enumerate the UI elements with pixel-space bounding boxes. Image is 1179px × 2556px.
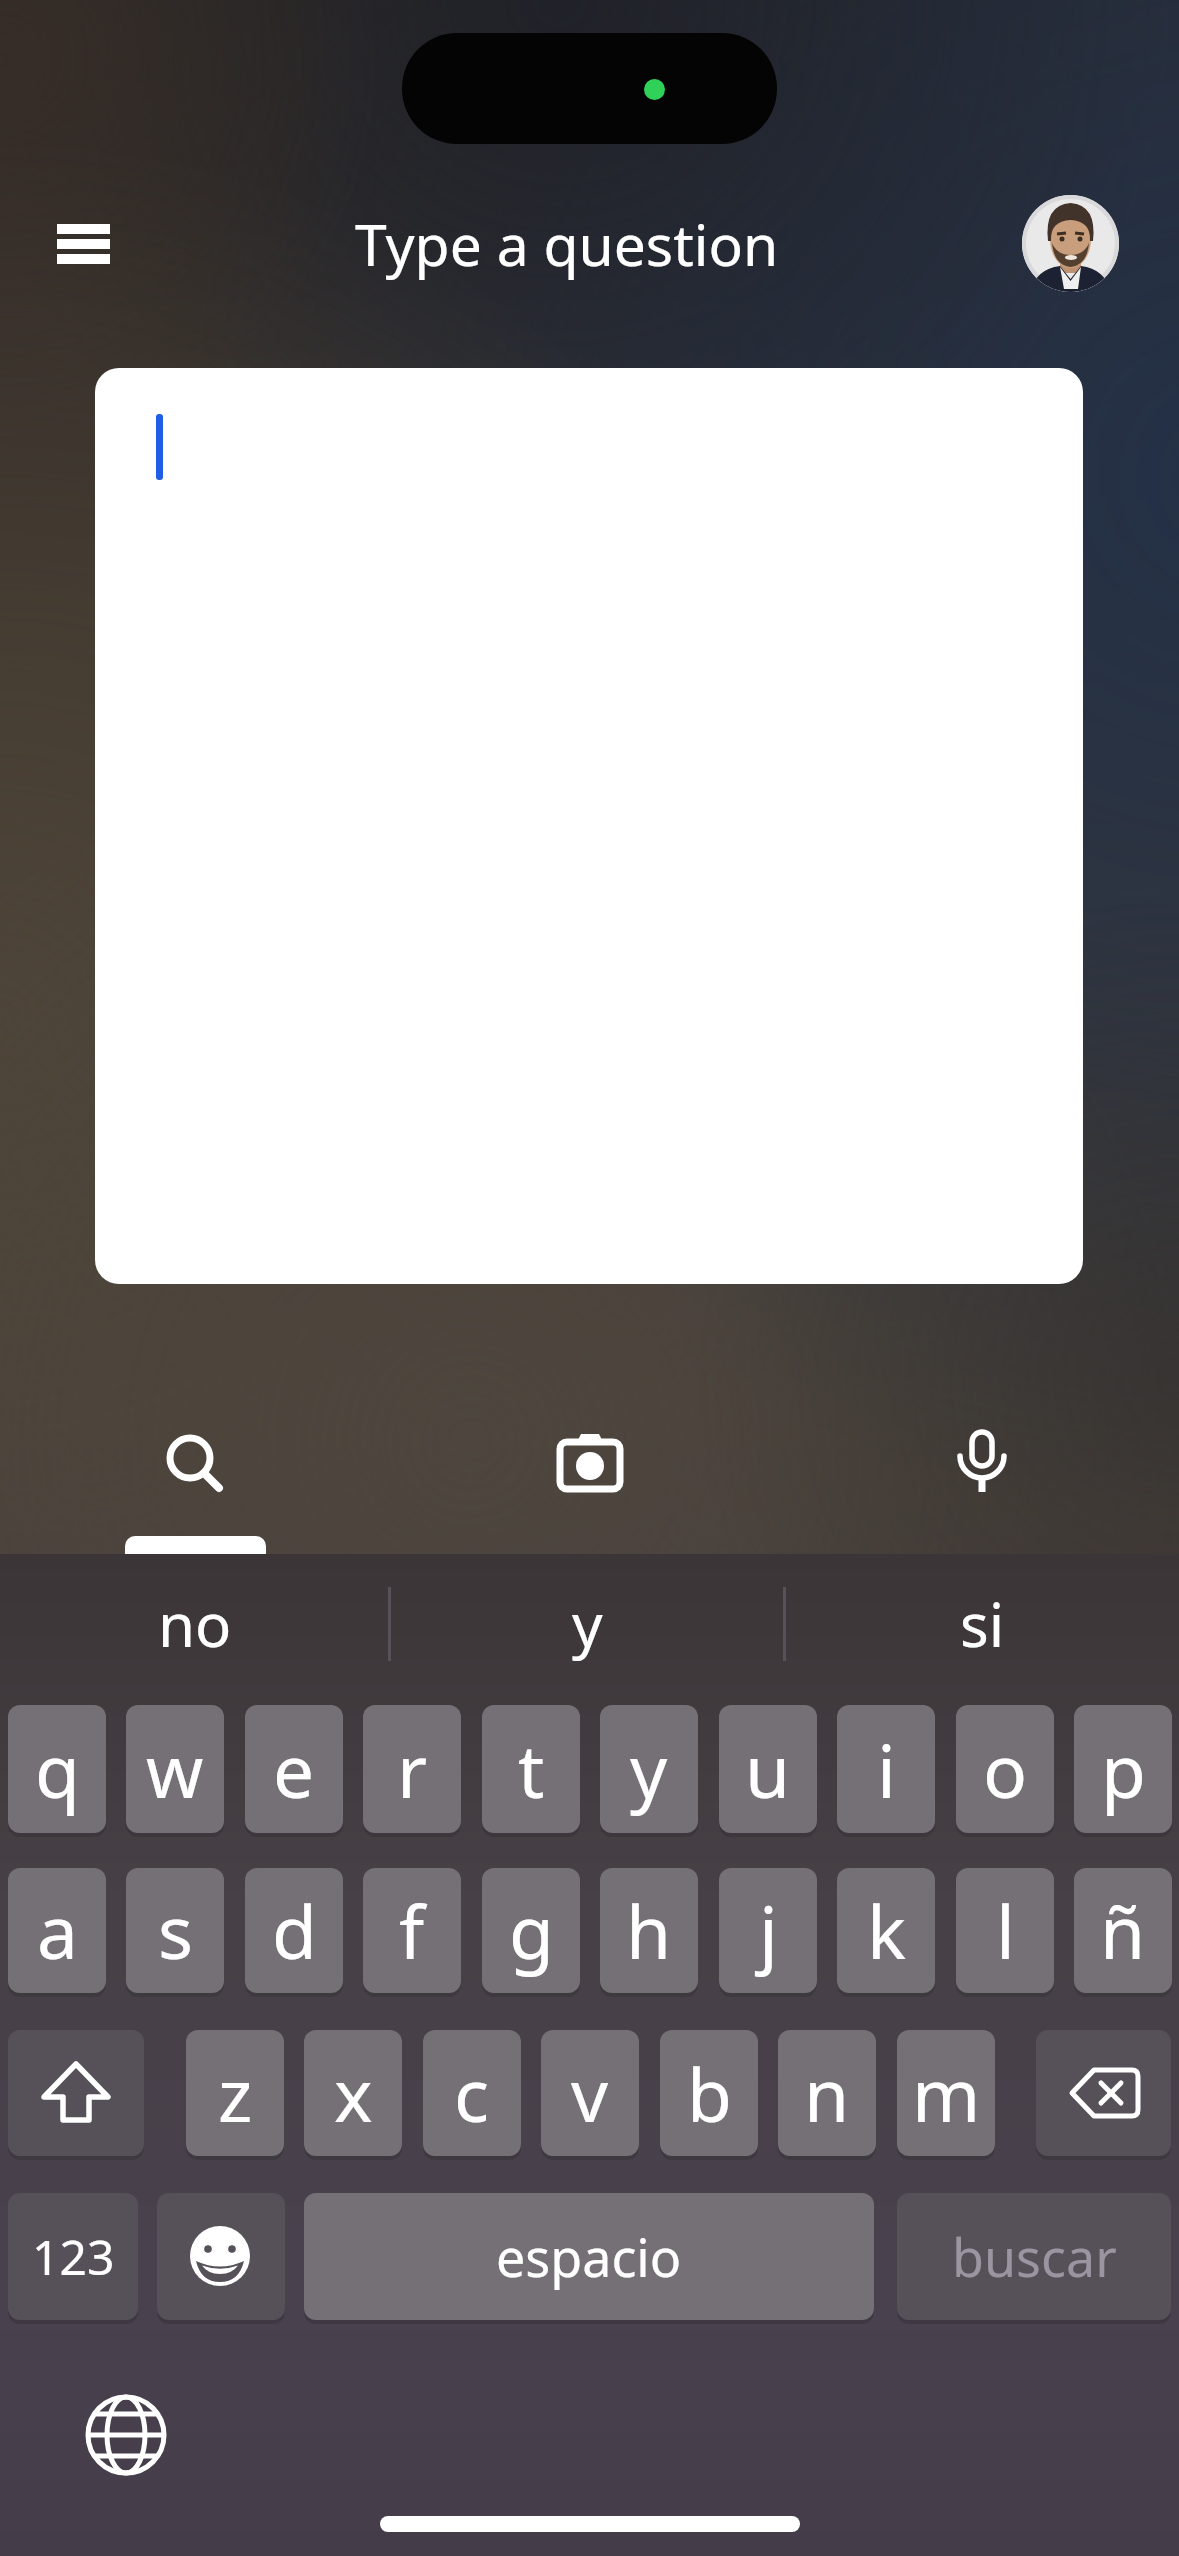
button[interactable]: i [837,1705,935,1833]
staticText: espacio [496,2221,682,2292]
staticText: o [983,1720,1028,1819]
button[interactable]: a [8,1868,106,1993]
button[interactable]: ñ [1074,1868,1172,1993]
button[interactable]: h [600,1868,698,1993]
button[interactable]: 123 [8,2193,138,2320]
staticText: z [218,2044,253,2143]
button[interactable] [158,1428,228,1498]
staticText: si [960,1583,1005,1665]
button[interactable]: z [186,2030,284,2156]
staticText: y [630,1720,668,1819]
button[interactable]: l [956,1868,1054,1993]
button[interactable] [157,2193,285,2320]
button[interactable] [1022,195,1119,292]
staticText: k [867,1881,906,1980]
staticText: j [759,1881,778,1980]
button[interactable]: j [719,1868,817,1993]
staticText: Type a question [355,205,779,281]
staticText: no [158,1583,232,1665]
button[interactable] [84,2393,168,2477]
button[interactable]: c [423,2030,521,2156]
staticText: u [745,1720,791,1819]
staticText: e [273,1720,315,1819]
staticText: s [158,1881,193,1980]
button[interactable]: t [482,1705,580,1833]
staticText: y [572,1583,603,1665]
button[interactable] [95,368,1083,1284]
button[interactable]: y [600,1705,698,1833]
button[interactable]: espacio [304,2193,874,2320]
button[interactable]: m [897,2030,995,2156]
button[interactable]: k [837,1868,935,1993]
button[interactable] [1036,2030,1171,2156]
staticText: 123 [32,2224,115,2289]
button[interactable]: p [1074,1705,1172,1833]
staticText: v [571,2044,609,2143]
staticText: c [454,2044,490,2143]
staticText: r [397,1720,428,1819]
button[interactable]: si [785,1582,1179,1666]
button[interactable]: n [778,2030,876,2156]
staticText: h [626,1881,672,1980]
button[interactable]: y [390,1582,785,1666]
button[interactable]: x [304,2030,402,2156]
staticText: buscar [952,2221,1117,2292]
button[interactable]: w [126,1705,224,1833]
button[interactable] [948,1428,1016,1496]
staticText: x [334,2044,373,2143]
button[interactable]: s [126,1868,224,1993]
button[interactable]: v [541,2030,639,2156]
button[interactable]: g [482,1868,580,1993]
staticText: m [912,2044,981,2143]
button[interactable]: f [363,1868,461,1993]
button[interactable]: b [660,2030,758,2156]
button[interactable]: u [719,1705,817,1833]
button[interactable]: buscar [897,2193,1171,2320]
button[interactable]: no [0,1582,390,1666]
staticText: t [518,1720,545,1819]
button[interactable] [8,2030,144,2156]
button[interactable]: q [8,1705,106,1833]
button[interactable]: r [363,1705,461,1833]
staticText: w [146,1720,204,1819]
button[interactable]: d [245,1868,343,1993]
staticText: g [509,1881,554,1980]
button[interactable] [555,1432,625,1494]
button[interactable]: e [245,1705,343,1833]
staticText: p [1101,1720,1146,1819]
staticText: q [35,1720,80,1819]
staticText: b [687,2044,732,2143]
staticText: d [272,1881,317,1980]
staticText: a [37,1881,78,1980]
staticText: l [996,1881,1015,1980]
staticText: f [399,1881,425,1980]
staticText: n [804,2044,850,2143]
staticText: ñ [1100,1881,1146,1980]
staticText: i [877,1720,896,1819]
button[interactable] [57,224,110,264]
button[interactable]: o [956,1705,1054,1833]
